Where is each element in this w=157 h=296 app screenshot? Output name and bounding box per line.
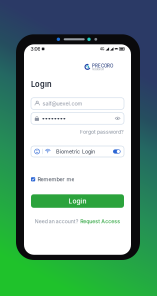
staticText: PROCUREMENT [92,69,104,71]
staticText: Biometric Login [56,148,95,155]
staticText: Forgot password? [80,129,124,135]
button[interactable]: Request Access [80,218,120,224]
staticText: Remember me [37,176,74,183]
staticText: 4G [100,47,105,51]
staticText: saif@uexel.com [42,100,82,107]
staticText: Login [31,80,52,89]
staticText: Login [68,197,86,205]
staticText: 3:06 [30,46,40,52]
button[interactable]: Login [31,194,124,208]
staticText: Need an account? [35,218,79,224]
button[interactable]: Remember me [31,176,124,183]
staticText: PRECORO [92,63,113,68]
staticText: Request Access [80,218,120,224]
button[interactable]: Forgot password? [80,129,124,135]
button[interactable]: Biometric Login [31,146,124,157]
staticText: •••••••• [42,115,66,122]
